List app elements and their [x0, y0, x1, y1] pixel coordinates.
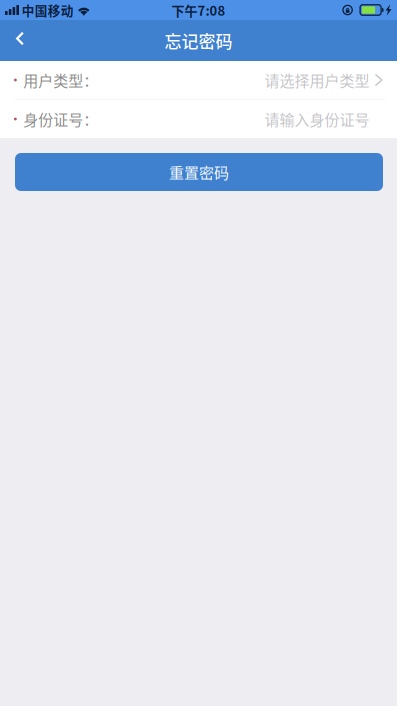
button[interactable]: 用户类型：	[0, 61, 397, 99]
staticText: 忘记密码	[164, 28, 232, 53]
staticText: 请输入身份证号	[264, 108, 369, 130]
staticText: 请选择用户类型	[264, 69, 369, 91]
staticText: 用户类型：	[23, 69, 98, 91]
staticText: 下午7:08	[171, 1, 225, 19]
button[interactable]: Back	[0, 20, 40, 61]
button[interactable]: 重置密码	[15, 153, 383, 191]
staticText: 中国移动	[22, 1, 74, 19]
staticText: 身份证号：	[23, 108, 98, 130]
staticText: 重置密码	[169, 161, 229, 183]
button[interactable]: 身份证号：	[0, 100, 397, 138]
